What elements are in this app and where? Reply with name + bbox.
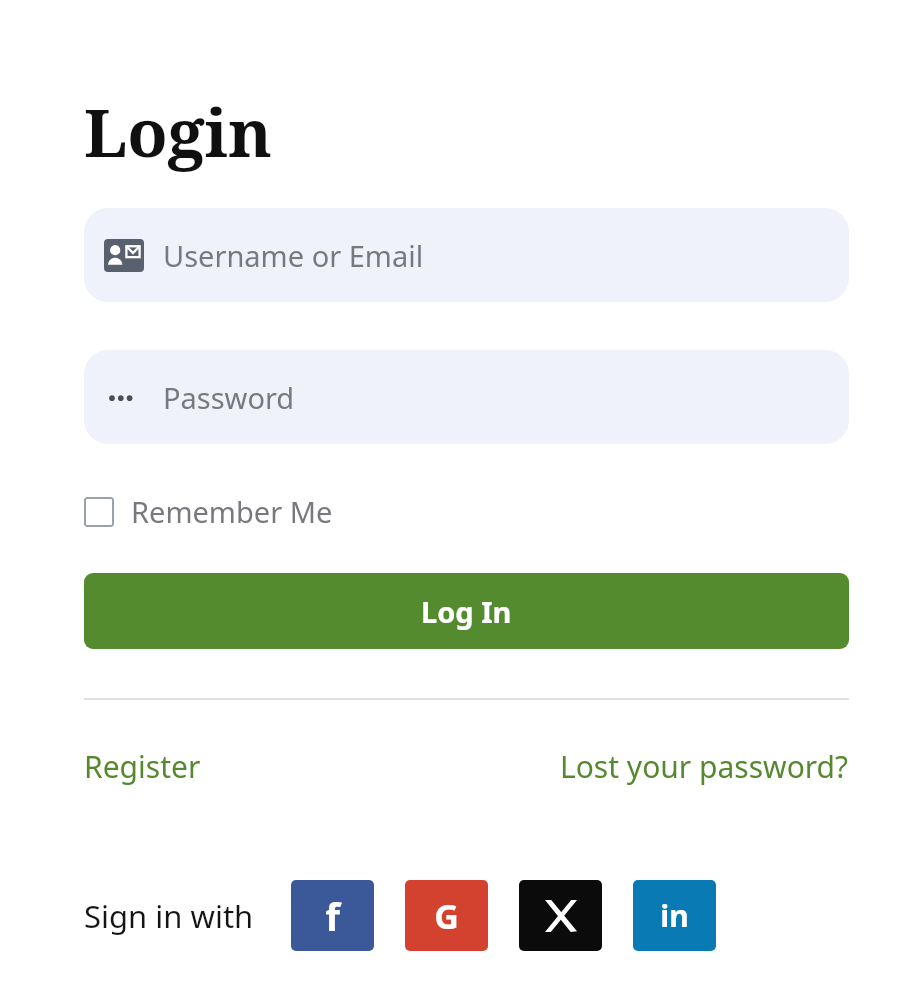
staticText: Lost your password? (560, 746, 849, 787)
staticText: Username or Email (163, 236, 424, 275)
button[interactable]: Log In (84, 573, 849, 649)
staticText: Login (84, 86, 272, 176)
button[interactable]: Sign in with Facebook (291, 880, 374, 951)
staticText: Remember Me (131, 492, 333, 531)
staticText: Password (163, 378, 295, 417)
staticText: Log In (421, 592, 512, 631)
staticText: Sign in with (84, 895, 254, 937)
button[interactable]: Remember Me (84, 492, 333, 531)
button[interactable]: Username or Email (84, 208, 849, 302)
staticText: G (434, 893, 459, 939)
staticText: in (660, 895, 689, 936)
button[interactable]: Sign in with Google (405, 880, 488, 951)
button[interactable]: Password (84, 350, 849, 444)
button[interactable]: Sign in with LinkedIn (633, 880, 716, 951)
button[interactable]: Register (84, 746, 201, 787)
button[interactable]: Lost your password? (560, 746, 849, 787)
staticText: Register (84, 746, 201, 787)
button[interactable]: Sign in with X (519, 880, 602, 951)
staticText: f (325, 890, 340, 942)
